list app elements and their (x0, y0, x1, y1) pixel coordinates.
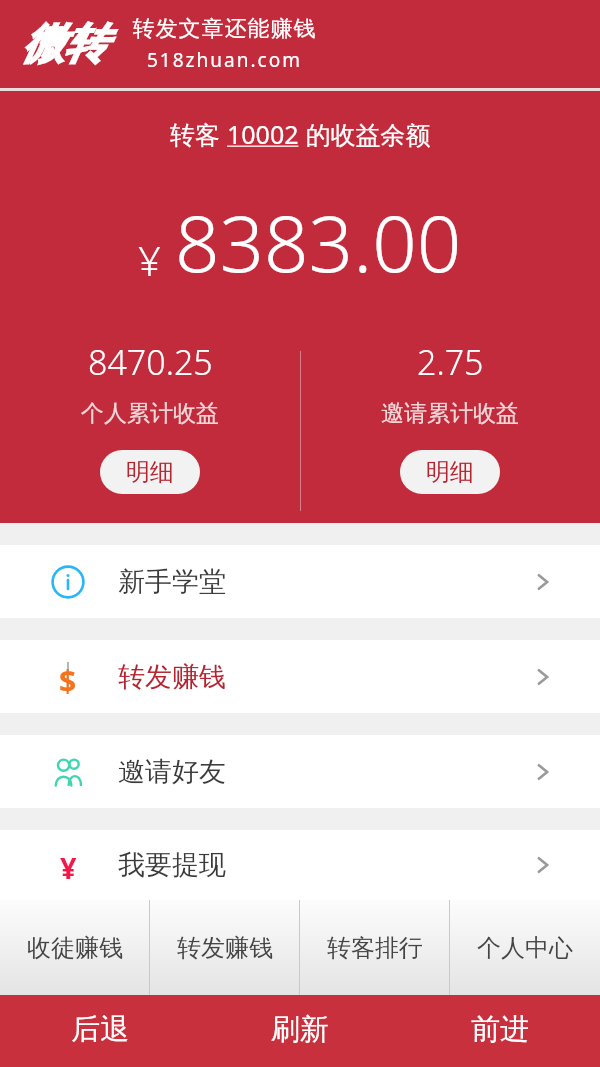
staticText: 8383.00 (175, 189, 462, 295)
staticText: 明细 (426, 457, 474, 487)
staticText: $ (59, 660, 77, 694)
staticText: 个人中心 (477, 933, 573, 963)
button[interactable]: Earn (0, 640, 600, 713)
staticText: 我要提现 (118, 848, 226, 882)
button[interactable]: 个人中心 (450, 900, 600, 995)
staticText: 转发文章还能赚钱 (132, 15, 316, 43)
staticText: 转发赚钱 (177, 933, 273, 963)
staticText: 新手学堂 (118, 565, 226, 599)
other: Withdraw (51, 848, 85, 882)
button[interactable]: 收徒赚钱 (0, 900, 150, 995)
button[interactable]: 转发赚钱 (150, 900, 300, 995)
staticText: 8470.25 (88, 339, 213, 385)
staticText: 收徒赚钱 (27, 933, 123, 963)
other: Info (51, 565, 85, 599)
staticText: 10002 (227, 117, 299, 151)
staticText: 518zhuan.com (147, 47, 302, 73)
other: Invite friends (51, 755, 85, 789)
button[interactable]: 刷新 (200, 995, 400, 1067)
staticText: 转客排行 (327, 933, 423, 963)
staticText: 转客 (170, 117, 227, 151)
button[interactable]: 转客排行 (300, 900, 450, 995)
staticText: 邀请累计收益 (381, 399, 519, 428)
other: Earn (51, 660, 85, 694)
staticText: ¥ (138, 233, 161, 287)
staticText: 个人累计收益 (81, 399, 219, 428)
button[interactable]: Info (0, 545, 600, 618)
staticText: 转发赚钱 (118, 660, 226, 694)
staticText: 刷新 (271, 1011, 329, 1048)
button[interactable]: 前进 (400, 995, 600, 1067)
button[interactable]: 后退 (0, 995, 200, 1067)
staticText: 明细 (126, 457, 174, 487)
staticText: 微转 (22, 18, 106, 71)
button[interactable]: 明细 (100, 450, 200, 494)
staticText: ¥ (60, 848, 77, 882)
staticText: 邀请好友 (118, 755, 226, 789)
staticText: 的收益余额 (299, 117, 431, 151)
staticText: 2.75 (417, 339, 484, 385)
button[interactable]: 明细 (400, 450, 500, 494)
button[interactable]: Invite friends (0, 735, 600, 808)
button[interactable]: Withdraw (0, 830, 600, 900)
staticText: 前进 (471, 1011, 529, 1048)
staticText: 后退 (71, 1011, 129, 1048)
